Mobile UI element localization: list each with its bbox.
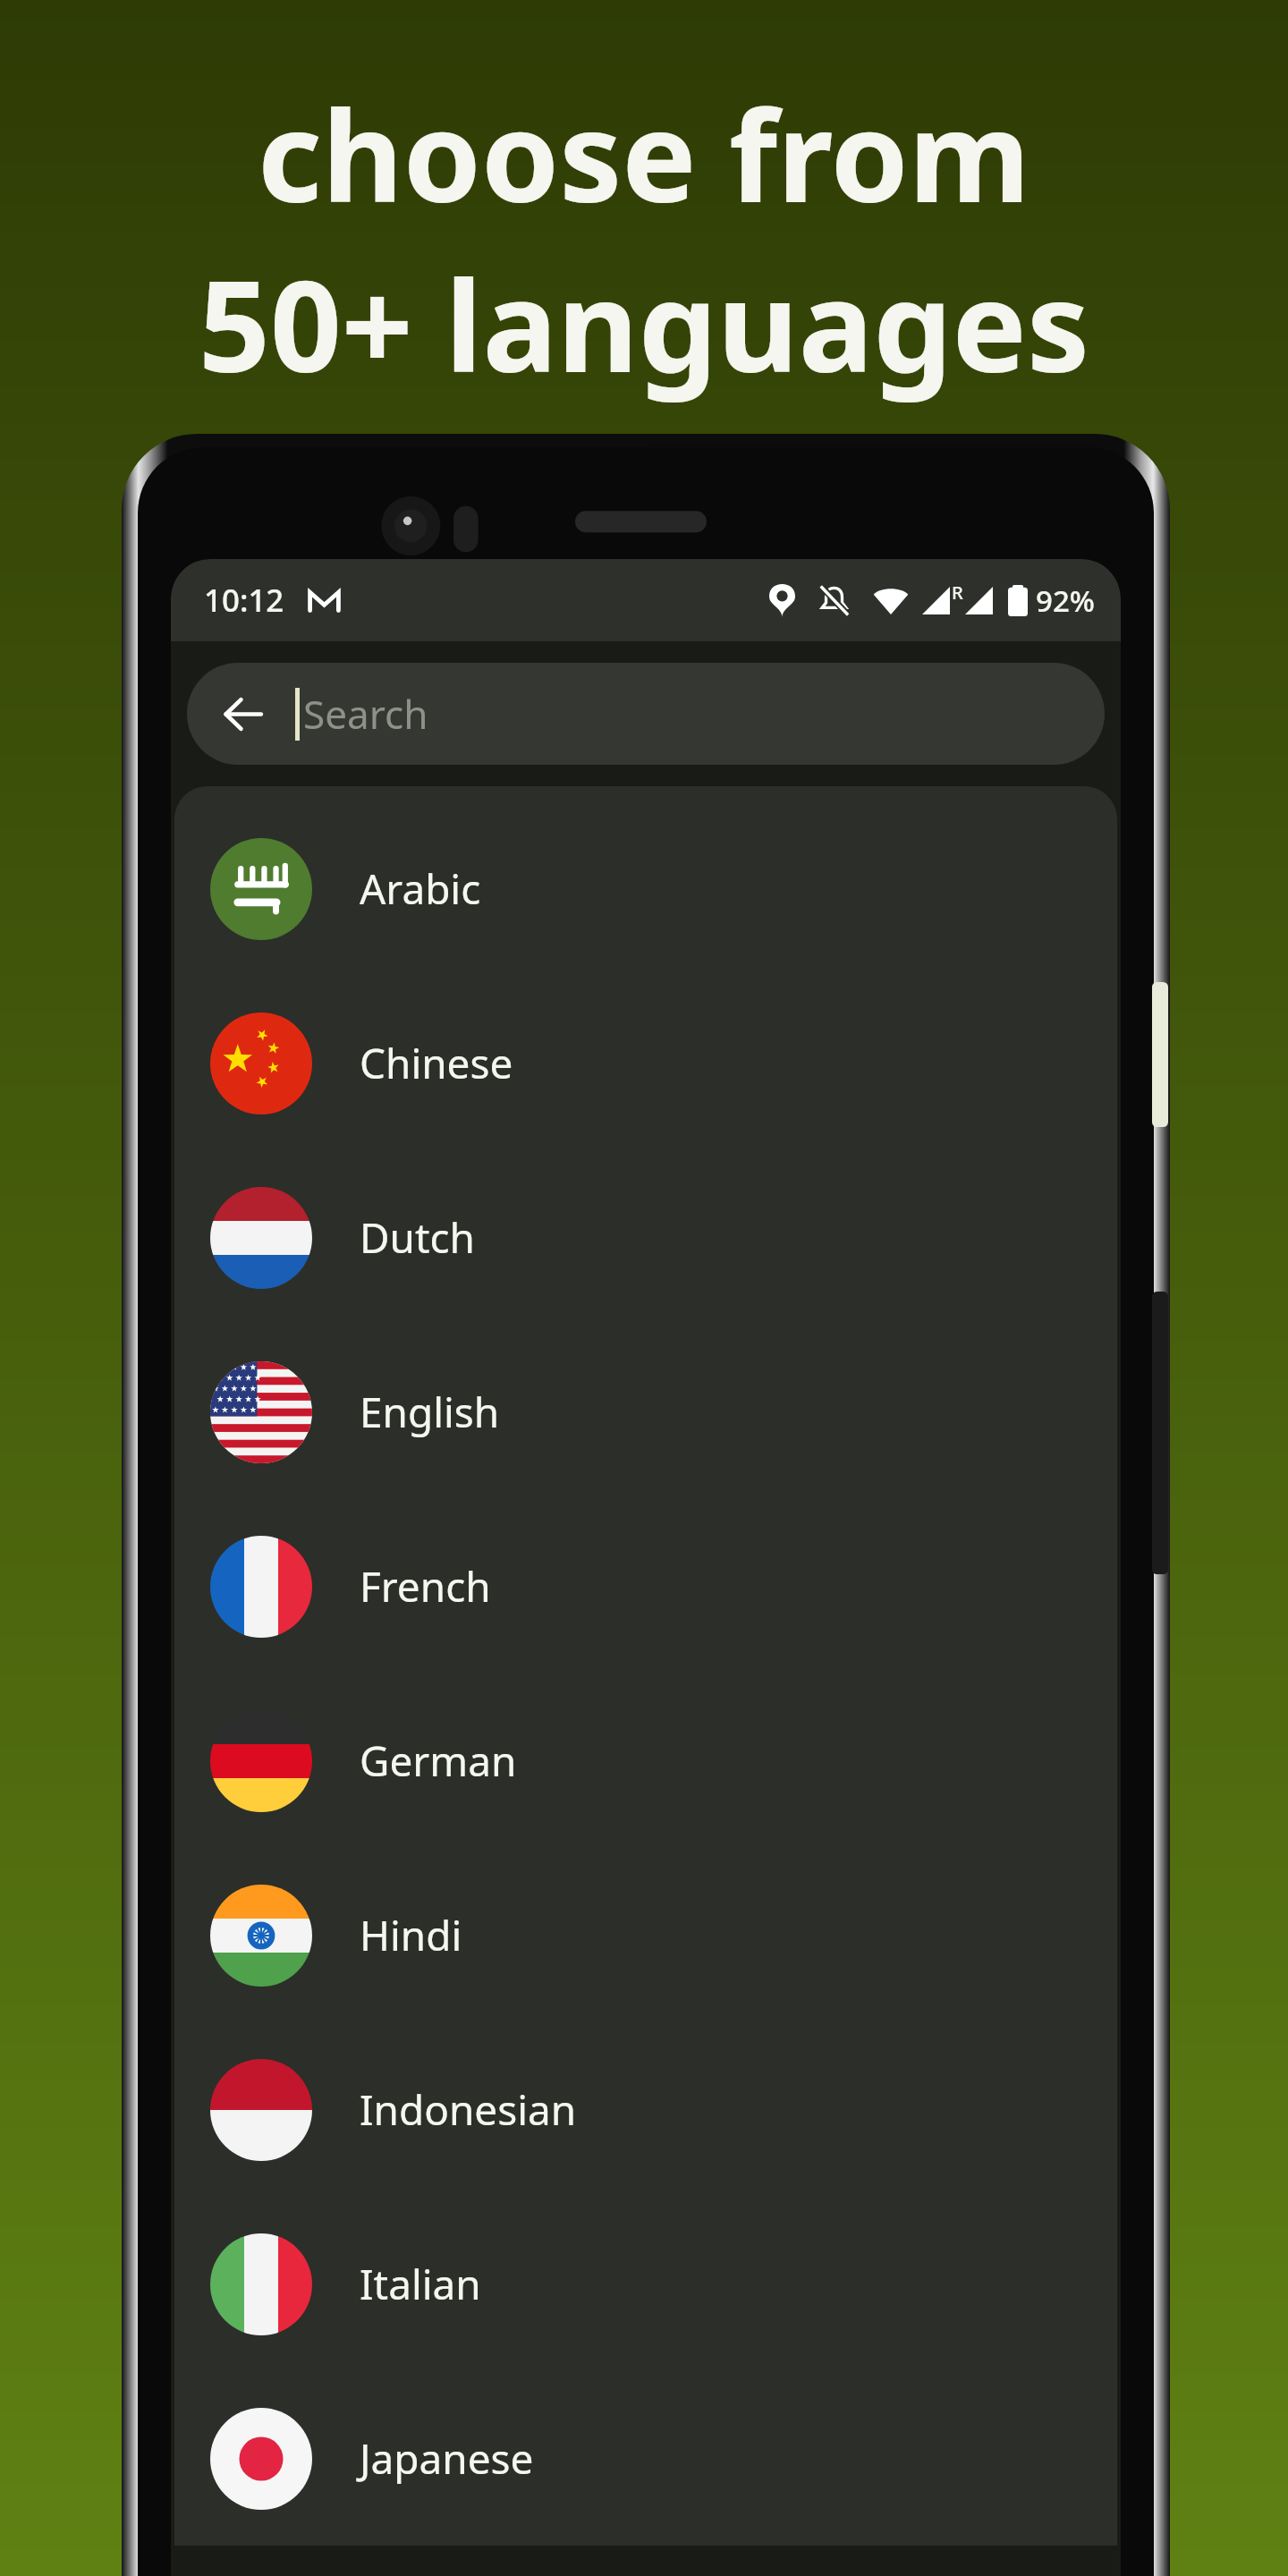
button[interactable]: English (174, 1325, 1117, 1499)
button[interactable]: Dutch (174, 1150, 1117, 1325)
staticText: Indonesian (360, 2081, 577, 2138)
button[interactable]: Arabic (174, 801, 1117, 976)
button[interactable]: Japanese (174, 2371, 1117, 2546)
button[interactable]: Italian (174, 2197, 1117, 2371)
staticText: 50+ languages (199, 239, 1089, 409)
staticText: French (360, 1558, 491, 1614)
staticText: Dutch (360, 1209, 475, 1266)
staticText: 92% (1036, 580, 1095, 621)
staticText: 10:12 (204, 579, 284, 622)
button[interactable]: German (174, 1674, 1117, 1848)
button[interactable]: Chinese (174, 976, 1117, 1150)
staticText: Arabic (360, 860, 481, 917)
other: Back (220, 691, 266, 737)
staticText: Hindi (360, 1907, 462, 1963)
staticText: R (952, 580, 963, 605)
staticText: Japanese (360, 2430, 534, 2487)
staticText: Italian (360, 2256, 481, 2312)
button[interactable]: Indonesian (174, 2022, 1117, 2197)
staticText: German (360, 1733, 517, 1789)
staticText: Search (303, 687, 428, 741)
staticText: Chinese (360, 1035, 513, 1091)
button[interactable]: Back (187, 663, 1105, 765)
staticText: English (360, 1384, 500, 1440)
button[interactable]: Hindi (174, 1848, 1117, 2022)
button[interactable]: French (174, 1499, 1117, 1674)
staticText: choose from (258, 69, 1030, 239)
